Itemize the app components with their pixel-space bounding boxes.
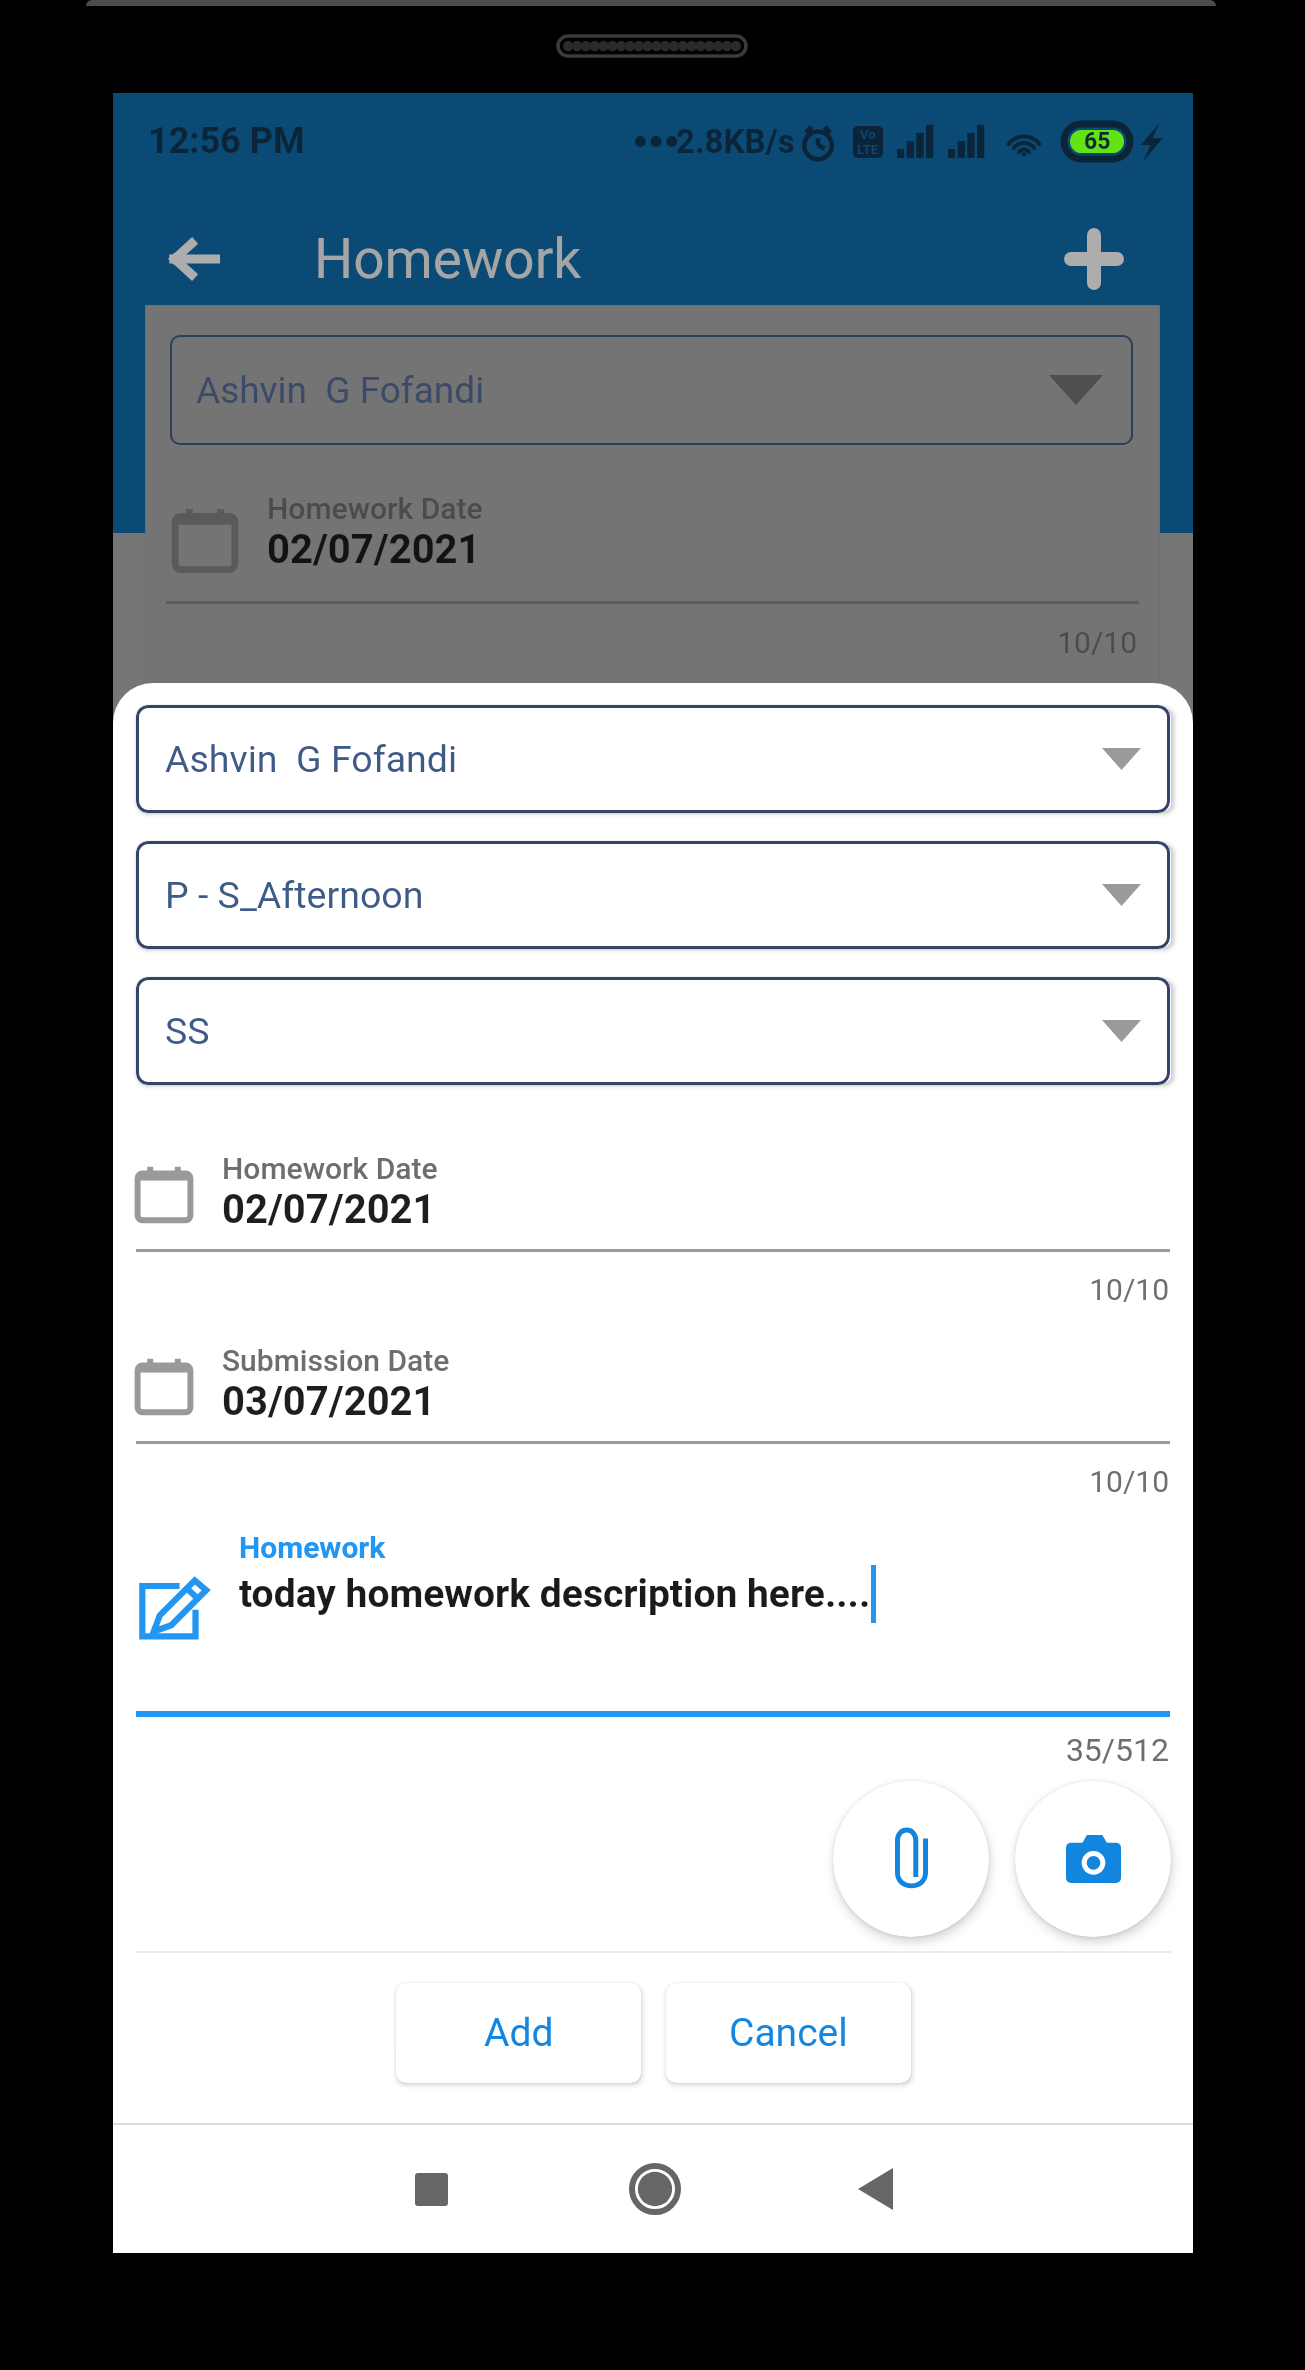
staticText: 03/07/2021 xyxy=(222,1378,436,1425)
button[interactable]: Homework Date xyxy=(134,1151,1193,1233)
button[interactable]: Ashvin G Fofandi xyxy=(136,705,1170,813)
button[interactable]: Add xyxy=(1029,194,1159,324)
button[interactable]: Recents xyxy=(375,2133,487,2245)
staticText: 10/10 xyxy=(113,1464,1169,1499)
staticText: Homework xyxy=(239,1530,386,1565)
staticText: 65 xyxy=(1084,128,1111,155)
staticText: 10/10 xyxy=(145,625,1137,660)
staticText: 12:56 PM xyxy=(148,120,305,162)
staticText: Submission Date xyxy=(222,1343,450,1378)
staticText: Homework xyxy=(314,227,582,291)
staticText: Cancel xyxy=(729,2010,848,2056)
staticText: 02/07/2021 xyxy=(267,526,481,573)
staticText: P - S_Afternoon xyxy=(165,873,424,917)
button[interactable]: Submission Date xyxy=(134,1343,1193,1425)
staticText: today homework description here.... xyxy=(239,1571,871,1617)
staticText: Vo xyxy=(860,127,876,142)
button[interactable]: Take photo xyxy=(1015,1781,1171,1937)
button[interactable]: Cancel xyxy=(666,1983,911,2083)
staticText: Homework Date xyxy=(267,491,483,526)
button[interactable]: Ashvin G Fofandi xyxy=(170,335,1133,445)
button[interactable]: P - S_Afternoon xyxy=(136,841,1170,949)
staticText: SS xyxy=(165,1009,210,1053)
staticText: Homework Date xyxy=(222,1151,438,1186)
staticText: Ashvin G Fofandi xyxy=(165,737,458,781)
staticText: 2.8KB/s xyxy=(676,122,795,161)
staticText: Add xyxy=(484,2010,554,2056)
staticText: LTE xyxy=(857,142,879,157)
staticText: Ashvin G Fofandi xyxy=(196,369,485,412)
staticText: 35/512 xyxy=(113,1731,1169,1769)
button[interactable]: Attach file xyxy=(833,1781,989,1937)
button[interactable]: Back xyxy=(129,194,259,324)
button[interactable]: Back xyxy=(819,2133,931,2245)
staticText: 02/07/2021 xyxy=(222,1186,436,1233)
staticText: 10/10 xyxy=(113,1272,1169,1307)
button[interactable]: Add xyxy=(396,1983,641,2083)
button[interactable]: SS xyxy=(136,977,1170,1085)
button[interactable]: Home xyxy=(599,2133,711,2245)
